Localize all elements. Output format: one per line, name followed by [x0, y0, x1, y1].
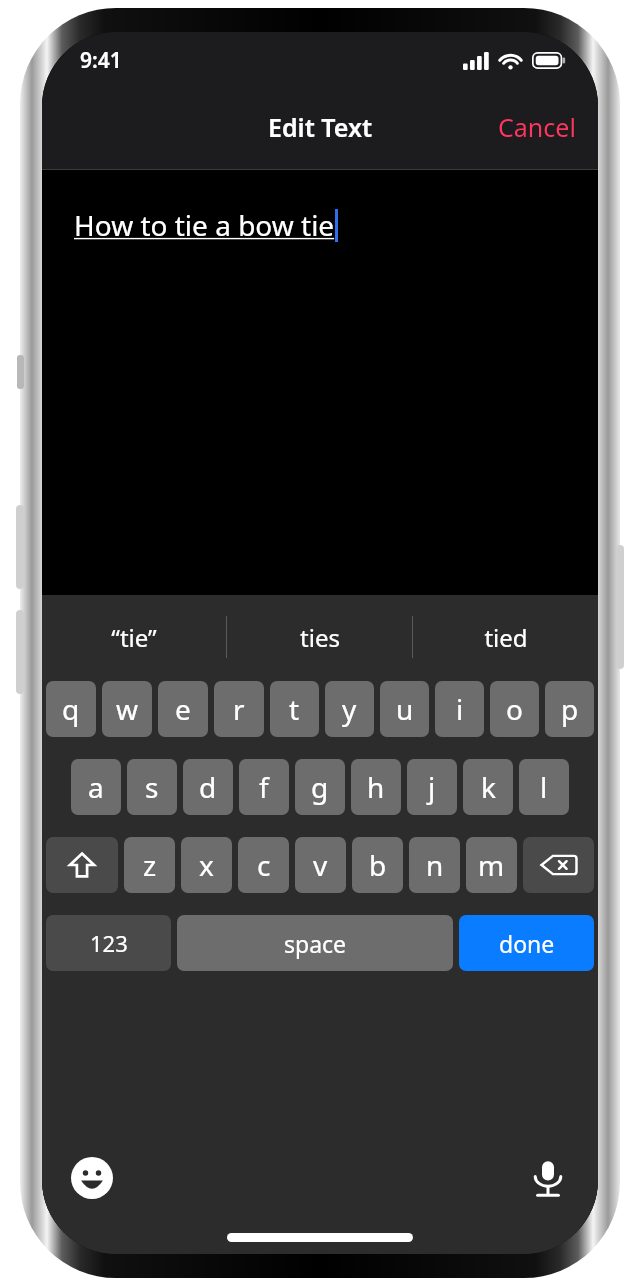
staticText: 9:41 — [80, 46, 122, 75]
staticText: m — [478, 846, 505, 884]
staticText: x — [199, 846, 214, 884]
staticText: l — [540, 768, 548, 806]
button[interactable]: done — [459, 915, 594, 971]
staticText: i — [456, 690, 464, 728]
button[interactable]: How to tie a bow tie — [42, 170, 598, 595]
staticText: v — [313, 846, 328, 884]
button[interactable]: c — [238, 837, 289, 893]
staticText: j — [428, 768, 436, 806]
staticText: p — [561, 690, 579, 728]
button[interactable]: p — [545, 681, 594, 737]
button[interactable]: x — [181, 837, 232, 893]
button[interactable]: v — [295, 837, 346, 893]
button[interactable]: o — [490, 681, 539, 737]
staticText: r — [233, 690, 245, 728]
staticText: u — [396, 690, 414, 728]
button[interactable]: u — [380, 681, 429, 737]
staticText: k — [481, 768, 496, 806]
button[interactable]: t — [270, 681, 319, 737]
staticText: a — [88, 768, 104, 806]
staticText: d — [199, 768, 217, 806]
button[interactable]: Shift — [46, 837, 118, 893]
button[interactable]: Backspace — [523, 837, 594, 893]
button[interactable]: Dictation — [518, 1148, 578, 1208]
staticText: done — [499, 928, 555, 959]
staticText: c — [257, 846, 271, 884]
staticText: y — [342, 690, 357, 728]
button[interactable]: g — [295, 759, 345, 815]
staticText: ties — [300, 621, 340, 654]
button[interactable]: l — [519, 759, 569, 815]
button[interactable]: m — [466, 837, 517, 893]
button[interactable]: Cancel — [476, 96, 598, 158]
staticText: How to tie a bow tie — [74, 206, 335, 244]
staticText: z — [143, 846, 157, 884]
button[interactable]: k — [463, 759, 513, 815]
staticText: q — [62, 690, 80, 728]
staticText: 123 — [90, 928, 128, 958]
button[interactable]: n — [409, 837, 460, 893]
button[interactable]: e — [158, 681, 208, 737]
staticText: “tie” — [111, 621, 157, 654]
staticText: tied — [484, 621, 528, 654]
button[interactable]: j — [407, 759, 457, 815]
button[interactable]: d — [183, 759, 233, 815]
button[interactable]: h — [351, 759, 401, 815]
button[interactable]: tied — [413, 595, 598, 679]
button[interactable]: q — [46, 681, 96, 737]
staticText: t — [289, 690, 300, 728]
button[interactable]: y — [325, 681, 374, 737]
button[interactable]: 123 — [46, 915, 171, 971]
staticText: g — [311, 768, 329, 806]
staticText: h — [367, 768, 385, 806]
button[interactable]: r — [214, 681, 264, 737]
staticText: s — [145, 768, 159, 806]
staticText: Edit Text — [268, 110, 373, 144]
button[interactable]: s — [127, 759, 177, 815]
button[interactable]: “tie” — [42, 595, 226, 679]
staticText: space — [284, 928, 347, 959]
staticText: b — [369, 846, 387, 884]
staticText: e — [175, 690, 191, 728]
staticText: Cancel — [498, 110, 576, 144]
button[interactable]: b — [352, 837, 403, 893]
button[interactable]: ties — [227, 595, 412, 679]
staticText: w — [116, 690, 139, 728]
button[interactable]: w — [102, 681, 152, 737]
button[interactable]: i — [435, 681, 484, 737]
button[interactable]: space — [177, 915, 453, 971]
staticText: o — [506, 690, 523, 728]
staticText: n — [426, 846, 444, 884]
button[interactable]: f — [239, 759, 289, 815]
button[interactable]: Emoji keyboard — [62, 1148, 122, 1208]
staticText: f — [259, 768, 269, 806]
button[interactable]: z — [124, 837, 175, 893]
button[interactable]: a — [71, 759, 121, 815]
